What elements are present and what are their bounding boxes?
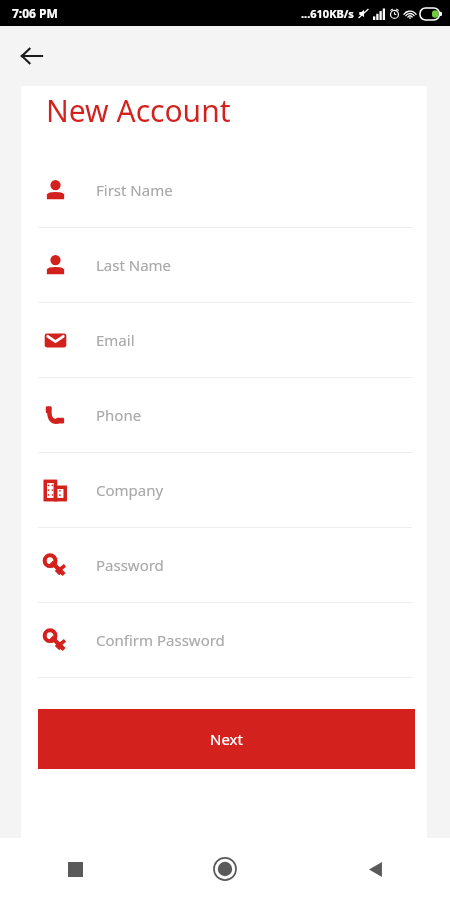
staticText: ...610KB/s <box>301 6 354 21</box>
staticText: Company <box>96 480 164 500</box>
staticText: Last Name <box>96 255 172 275</box>
staticText: 7:06 PM <box>12 5 58 21</box>
staticText: Phone <box>96 405 142 425</box>
staticText: New Account <box>46 90 231 131</box>
button[interactable]: Recents <box>0 838 150 900</box>
button[interactable]: Company <box>21 453 427 528</box>
button[interactable]: Confirm Password <box>21 603 427 678</box>
staticText: Password <box>96 555 164 575</box>
staticText: Confirm Password <box>96 630 225 650</box>
button[interactable]: First Name <box>21 153 427 228</box>
button[interactable]: Email <box>21 303 427 378</box>
button[interactable]: Last Name <box>21 228 427 303</box>
button[interactable]: Back <box>10 34 54 78</box>
staticText: Email <box>96 330 135 350</box>
button[interactable]: Phone <box>21 378 427 453</box>
button[interactable]: Password <box>21 528 427 603</box>
staticText: First Name <box>96 180 173 200</box>
button[interactable]: Back <box>300 838 450 900</box>
button[interactable]: Home <box>150 838 300 900</box>
button[interactable]: Next <box>38 709 415 769</box>
staticText: Next <box>210 729 243 749</box>
